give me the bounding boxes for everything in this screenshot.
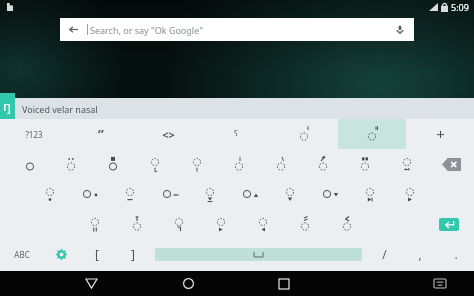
button[interactable]: Diacritic key bbox=[218, 149, 260, 179]
button[interactable]: [ bbox=[79, 239, 115, 269]
staticText: / bbox=[382, 246, 387, 262]
button[interactable]: Diacritic key bbox=[390, 179, 430, 209]
button[interactable]: Backspace bbox=[428, 149, 474, 179]
button[interactable]: Diacritic key bbox=[270, 179, 310, 209]
button[interactable]: Voiced velar nasal bbox=[0, 98, 474, 119]
staticText: ABC bbox=[14, 249, 30, 260]
button[interactable]: Diacritic key bbox=[284, 209, 326, 239]
other: Key preview eng bbox=[0, 93, 15, 119]
staticText: Voiced velar nasal bbox=[22, 103, 98, 115]
button[interactable]: Space bbox=[151, 239, 366, 269]
button[interactable]: Diacritic key bbox=[200, 209, 242, 239]
button[interactable]: Diacritic key bbox=[326, 209, 368, 239]
button[interactable]: Diacritic key bbox=[70, 179, 110, 209]
staticText: ] bbox=[131, 246, 135, 262]
button[interactable]: Diacritic key bbox=[338, 119, 406, 149]
button[interactable]: Diacritic key bbox=[242, 209, 284, 239]
button[interactable]: Diacritic key bbox=[386, 149, 428, 179]
staticText: 5:09 bbox=[451, 1, 469, 13]
button[interactable]: . bbox=[438, 239, 474, 269]
staticText: ŋ bbox=[3, 97, 12, 115]
button[interactable]: Diacritic key bbox=[110, 179, 150, 209]
button[interactable]: Back bbox=[61, 271, 122, 296]
staticText: <> bbox=[162, 127, 175, 142]
button[interactable]: Diacritic key bbox=[190, 179, 230, 209]
button[interactable]: Recent apps bbox=[254, 271, 314, 296]
button[interactable]: ] bbox=[115, 239, 151, 269]
button[interactable]: <> bbox=[134, 119, 202, 149]
button[interactable]: , bbox=[402, 239, 438, 269]
button[interactable]: Diacritic key bbox=[116, 209, 158, 239]
button[interactable]: Diacritic key bbox=[344, 149, 386, 179]
button[interactable]: Diacritic key bbox=[230, 179, 270, 209]
button[interactable]: Diacritic key bbox=[302, 149, 344, 179]
button[interactable]: Switch keyboard bbox=[410, 271, 470, 296]
button[interactable]: ABC bbox=[0, 239, 43, 269]
button[interactable]: Home bbox=[158, 271, 218, 296]
button[interactable]: Diacritic key bbox=[350, 179, 390, 209]
button[interactable]: Diacritic key bbox=[176, 149, 218, 179]
staticText: Search, or say "Ok Google" bbox=[90, 24, 203, 36]
staticText: ” bbox=[98, 125, 104, 143]
button[interactable]: Diacritic key bbox=[73, 209, 116, 239]
button[interactable]: ” bbox=[67, 119, 134, 149]
staticText: + bbox=[436, 124, 445, 144]
button[interactable]: Settings bbox=[43, 239, 79, 269]
button[interactable]: Diacritic key bbox=[50, 149, 92, 179]
other: Voice search bbox=[394, 24, 406, 36]
staticText: , bbox=[418, 246, 422, 262]
button[interactable]: / bbox=[366, 239, 402, 269]
button[interactable]: Back bbox=[60, 18, 414, 41]
button[interactable]: Diacritic key bbox=[270, 119, 338, 149]
button[interactable]: Diacritic key bbox=[158, 209, 200, 239]
button[interactable]: Diacritic key bbox=[92, 149, 134, 179]
staticText: . bbox=[454, 246, 458, 262]
staticText: ˤ bbox=[234, 125, 238, 144]
button[interactable]: ?123 bbox=[0, 119, 67, 149]
button[interactable]: ˤ bbox=[202, 119, 270, 149]
other: Back bbox=[68, 24, 79, 35]
button[interactable]: Diacritic key bbox=[150, 179, 190, 209]
button[interactable]: Diacritic key bbox=[310, 179, 350, 209]
button[interactable]: Diacritic key bbox=[260, 149, 302, 179]
button[interactable]: Diacritic key bbox=[29, 179, 70, 209]
button[interactable]: + bbox=[406, 119, 474, 149]
button[interactable]: Enter bbox=[423, 209, 474, 239]
button[interactable]: Diacritic key bbox=[9, 149, 50, 179]
staticText: ?123 bbox=[25, 129, 43, 140]
button[interactable]: Diacritic key bbox=[134, 149, 176, 179]
staticText: [ bbox=[95, 246, 99, 262]
